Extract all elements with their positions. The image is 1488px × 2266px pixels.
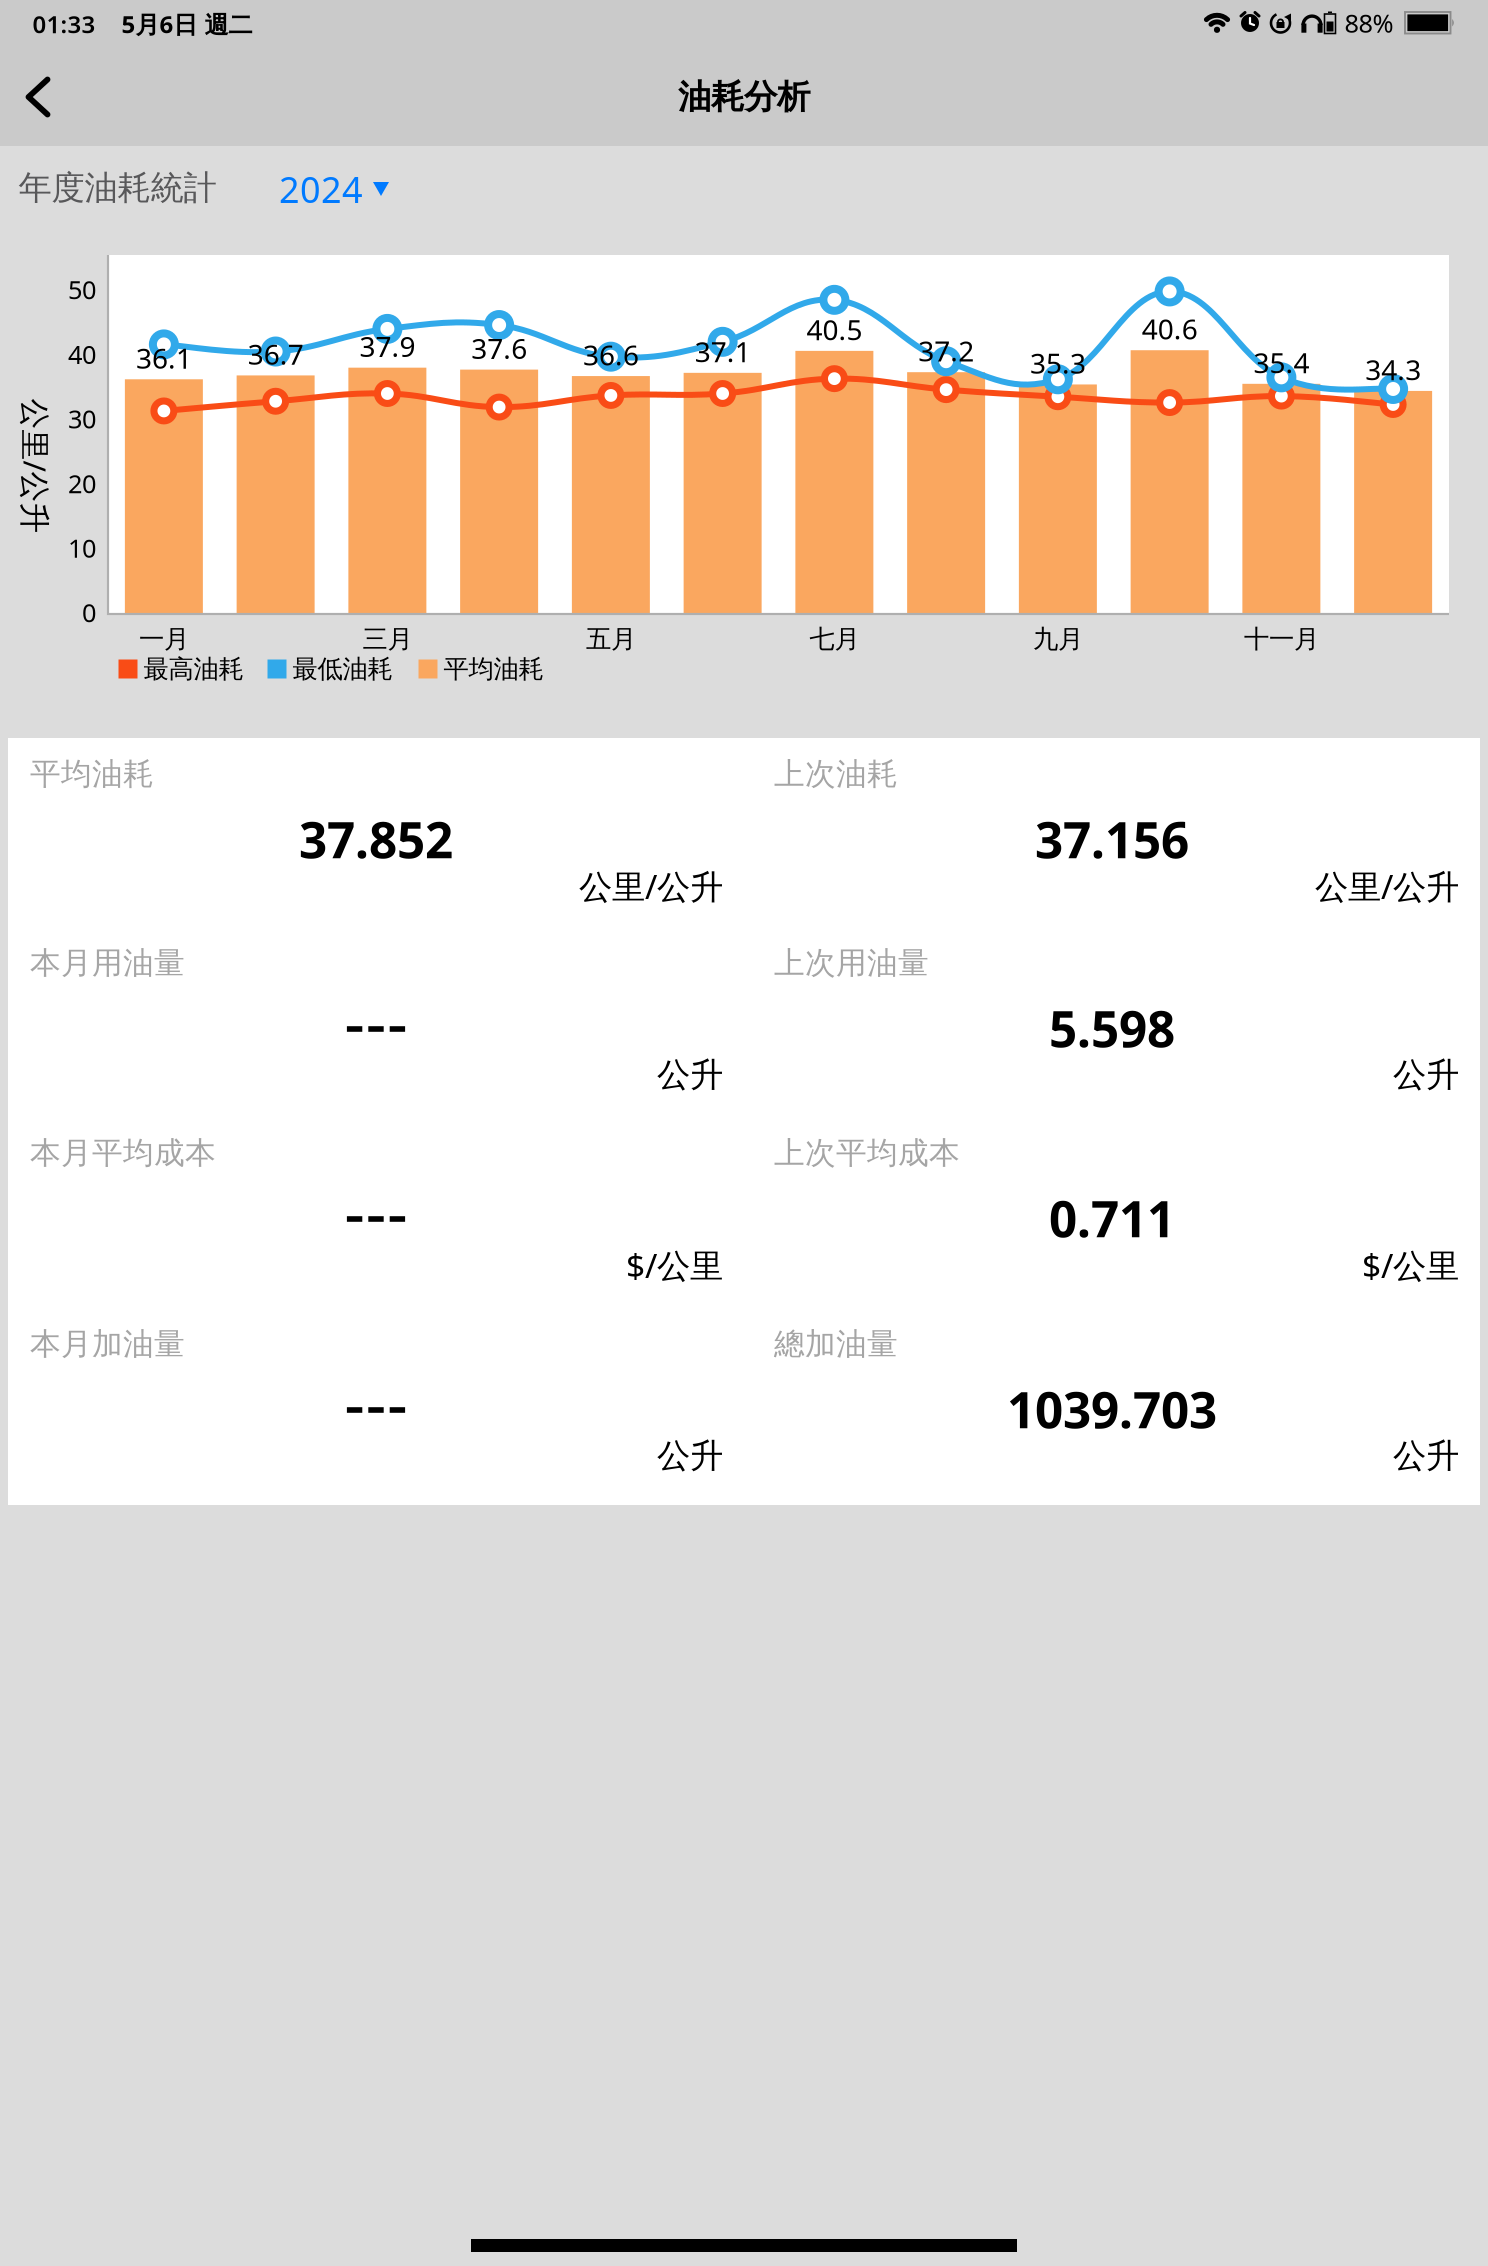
staticText: 37.6: [471, 329, 527, 367]
staticText: 37.852: [299, 806, 453, 872]
staticText: 本月加油量: [30, 1325, 185, 1363]
staticText: 公里/公升: [0, 446, 103, 486]
staticText: 0: [82, 596, 96, 629]
staticText: 88%: [1344, 6, 1393, 40]
staticText: 公升: [657, 1054, 723, 1095]
staticText: 1039.703: [1007, 1376, 1217, 1442]
staticText: 平均油耗: [443, 653, 543, 684]
staticText: 40.6: [1142, 310, 1198, 347]
staticText: 20: [68, 466, 96, 500]
staticText: $/公里: [626, 1243, 723, 1287]
staticText: 十一月: [1244, 623, 1319, 654]
staticText: 37.1: [695, 333, 751, 370]
staticText: 公升: [657, 1435, 723, 1476]
staticText: 36.1: [136, 339, 192, 376]
staticText: 2024: [279, 165, 363, 213]
staticText: 40: [68, 337, 96, 371]
staticText: 一月: [139, 623, 189, 654]
staticText: 九月: [1033, 623, 1083, 654]
staticText: 10: [68, 531, 96, 565]
staticText: 上次平均成本: [774, 1134, 960, 1172]
staticText: 公升: [1393, 1054, 1459, 1095]
staticText: 40.5: [806, 311, 862, 348]
staticText: 01:33: [32, 8, 95, 40]
staticText: 0.711: [1049, 1185, 1175, 1251]
staticText: 三月: [362, 623, 412, 654]
staticText: 本月平均成本: [30, 1134, 216, 1172]
staticText: 5月6日 週二: [121, 8, 252, 40]
staticText: 上次油耗: [774, 755, 898, 793]
staticText: 本月用油量: [30, 944, 185, 982]
staticText: 50: [68, 273, 96, 306]
staticText: 油耗分析: [678, 76, 810, 117]
staticText: 最高油耗: [143, 653, 243, 684]
staticText: 35.3: [1030, 344, 1086, 382]
staticText: 37.156: [1035, 806, 1189, 872]
staticText: 37.2: [918, 332, 974, 369]
staticText: 年度油耗統計: [18, 167, 216, 208]
staticText: 36.7: [248, 335, 304, 372]
staticText: 30: [68, 402, 96, 435]
staticText: 公里/公升: [1315, 864, 1459, 908]
staticText: 公里/公升: [579, 864, 723, 908]
staticText: 平均油耗: [30, 755, 154, 793]
button[interactable]: [23, 75, 53, 119]
staticText: 34.3: [1365, 351, 1421, 388]
button[interactable]: 2024: [279, 165, 389, 213]
staticText: 36.6: [583, 336, 639, 373]
staticText: 總加油量: [774, 1325, 898, 1363]
staticText: 公升: [1393, 1435, 1459, 1476]
staticText: $/公里: [1362, 1243, 1459, 1287]
staticText: 最低油耗: [292, 653, 392, 684]
staticText: 37.9: [359, 328, 415, 365]
staticText: 七月: [809, 623, 859, 654]
staticText: 上次用油量: [774, 944, 929, 982]
staticText: 35.4: [1253, 344, 1309, 381]
staticText: 五月: [586, 623, 636, 654]
staticText: 5.598: [1049, 995, 1175, 1061]
